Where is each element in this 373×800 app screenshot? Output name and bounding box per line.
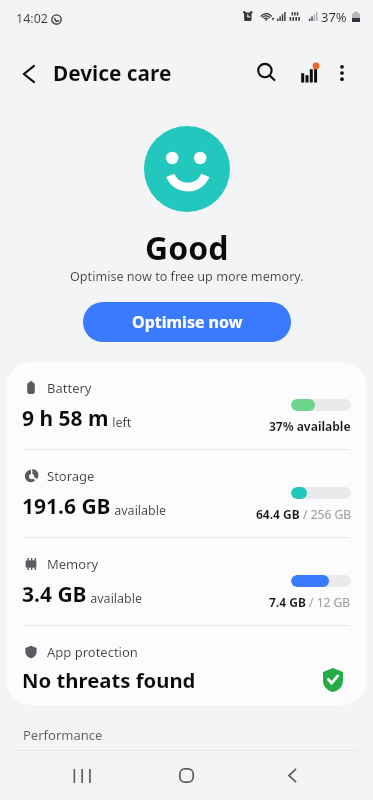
staticText: / 256 GB (300, 506, 351, 522)
button[interactable]: Navigate up (14, 59, 44, 89)
staticText: left (109, 414, 132, 431)
staticText: 37% (321, 8, 347, 26)
button[interactable]: Memory (6, 538, 367, 625)
staticText: Device care (53, 59, 172, 87)
staticText: available (87, 590, 143, 607)
staticText: No threats found (22, 666, 196, 694)
staticText: 14:02 (16, 10, 48, 27)
staticText: 7.4 GB (269, 594, 306, 610)
staticText: Memory (47, 555, 99, 573)
button[interactable]: Storage (6, 450, 367, 537)
staticText: / 12 GB (306, 594, 351, 610)
staticText: Good (145, 226, 229, 270)
staticText: 191.6 GB (22, 492, 111, 521)
button[interactable]: Battery (6, 362, 367, 449)
button[interactable]: Optimise now (83, 302, 291, 342)
button[interactable]: Usage statistics (294, 58, 324, 88)
staticText: Battery (47, 379, 92, 397)
staticText: Optimise now to free up more memory. (70, 268, 304, 285)
staticText: 64.4 GB (256, 506, 300, 522)
button[interactable]: Back (268, 751, 317, 800)
staticText: available (111, 502, 167, 519)
staticText: Storage (47, 467, 95, 485)
staticText: 37% available (269, 418, 351, 434)
button[interactable]: More options (327, 58, 357, 88)
staticText: 9 h 58 m (22, 404, 109, 433)
staticText: Optimise now (132, 311, 243, 333)
button[interactable]: App protection (6, 626, 367, 705)
button[interactable]: Home (162, 751, 211, 800)
button[interactable]: Recent apps (57, 751, 106, 800)
staticText: App protection (47, 643, 138, 661)
button[interactable]: Search (252, 58, 282, 88)
staticText: Performance (23, 726, 103, 744)
staticText: 3.4 GB (22, 580, 87, 609)
